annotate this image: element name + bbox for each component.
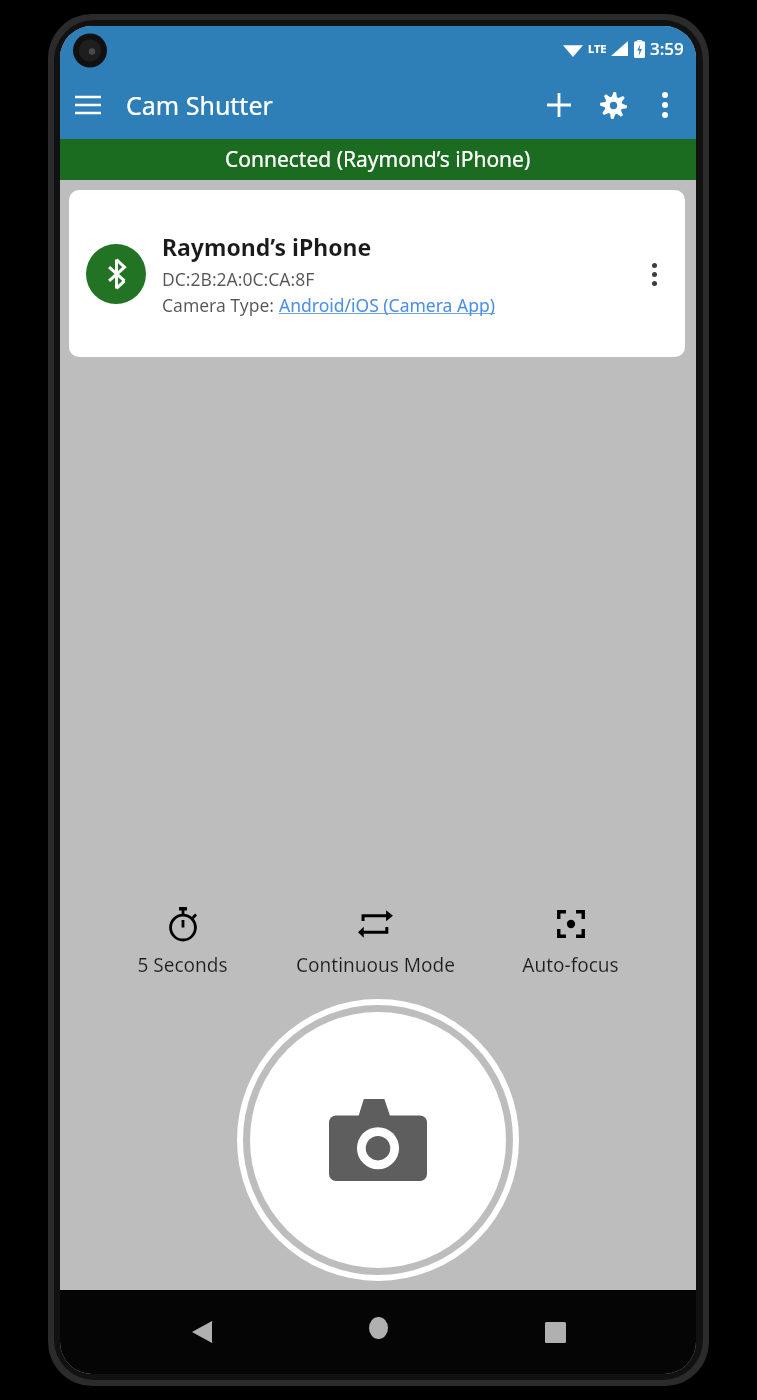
staticText: Raymond’s iPhone [162,231,372,262]
staticText: DC:2B:2A:0C:CA:8F [162,267,315,291]
button[interactable]: Shutter [237,999,519,1281]
staticText: 5 Seconds [137,952,228,978]
button[interactable]: Home [343,1293,413,1363]
button[interactable]: Open navigation drawer [60,77,116,133]
staticText: Continuous Mode [296,952,455,978]
button[interactable]: Device options [627,247,681,301]
button[interactable]: Add device [532,78,586,132]
button[interactable]: Settings [586,78,640,132]
button[interactable]: Continuous Mode [290,902,461,982]
button[interactable]: Raymond’s iPhone [69,190,685,357]
staticText: Camera Type: [162,293,279,317]
staticText: Cam Shutter [126,88,273,122]
button[interactable]: Recent apps [520,1297,590,1367]
button[interactable]: Connected (Raymond’s iPhone) [60,139,696,180]
staticText: 3:59 [650,37,684,60]
button[interactable]: Android/iOS (Camera App) [279,293,495,317]
button[interactable]: 5 Seconds [131,902,234,982]
staticText: Auto-focus [522,952,619,978]
button[interactable]: Back [167,1297,237,1367]
button[interactable]: More options [640,80,690,130]
button[interactable]: Auto-focus [516,902,625,982]
staticText: LTE [588,41,607,56]
staticText: Connected (Raymond’s iPhone) [225,145,531,174]
